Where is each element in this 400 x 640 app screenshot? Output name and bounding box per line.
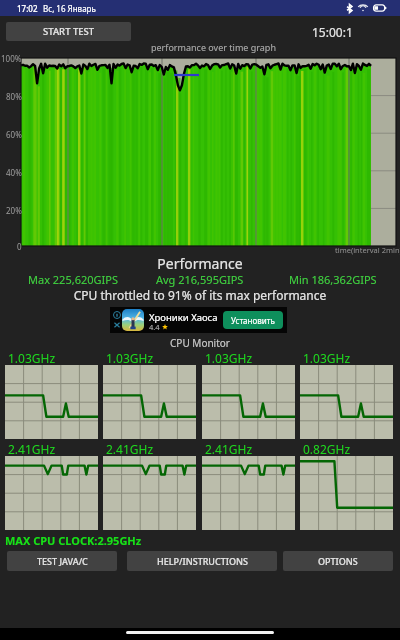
staticText: 17:02 xyxy=(17,3,38,14)
staticText: TEST JAVA/C xyxy=(37,555,88,567)
staticText: 80% xyxy=(6,91,22,102)
staticText: 15:00:1 xyxy=(312,24,353,40)
staticText: 1.03GHz xyxy=(8,350,56,366)
staticText: Хроники Хаоса xyxy=(149,311,218,324)
staticText: Вс, 16 Январь xyxy=(43,3,96,14)
staticText: performance over time graph xyxy=(151,41,276,53)
staticText: CPU throttled to 91% of its max performa… xyxy=(0,287,400,303)
staticText: Max 225,620GIPS xyxy=(28,272,118,287)
staticText: 40% xyxy=(6,167,22,178)
staticText: START TEST xyxy=(43,25,95,38)
staticText: 1.03GHz xyxy=(303,350,351,366)
staticText: 20% xyxy=(6,205,22,216)
button[interactable]: START TEST xyxy=(6,22,131,41)
button[interactable]: TEST JAVA/C xyxy=(7,551,117,571)
staticText: CPU Monitor xyxy=(0,336,400,350)
staticText: 0 xyxy=(17,241,22,252)
staticText: 60% xyxy=(6,129,22,140)
staticText: 2.41GHz xyxy=(8,441,56,457)
staticText: 0.82GHz xyxy=(303,441,351,457)
staticText: 4.4 xyxy=(149,322,160,332)
staticText: Avg 216,595GIPS xyxy=(156,272,244,287)
button[interactable]: Хроники Хаоса xyxy=(110,307,287,333)
staticText: OPTIONS xyxy=(318,555,358,567)
button[interactable]: Установить xyxy=(223,311,283,329)
staticText: 2.41GHz xyxy=(205,441,253,457)
staticText: Min 186,362GIPS xyxy=(289,272,377,287)
staticText: 1.03GHz xyxy=(205,350,253,366)
button[interactable]: OPTIONS xyxy=(283,551,393,571)
staticText: Установить xyxy=(231,315,275,326)
staticText: Performance xyxy=(0,254,400,273)
staticText: 1.03GHz xyxy=(106,350,154,366)
button[interactable]: HELP/INSTRUCTIONS xyxy=(127,551,277,571)
staticText: 2.41GHz xyxy=(106,441,154,457)
staticText: time(interval 2min) xyxy=(335,245,400,255)
staticText: 100% xyxy=(1,53,22,64)
staticText: MAX CPU CLOCK:2.95GHz xyxy=(5,533,142,548)
staticText: HELP/INSTRUCTIONS xyxy=(157,555,248,567)
